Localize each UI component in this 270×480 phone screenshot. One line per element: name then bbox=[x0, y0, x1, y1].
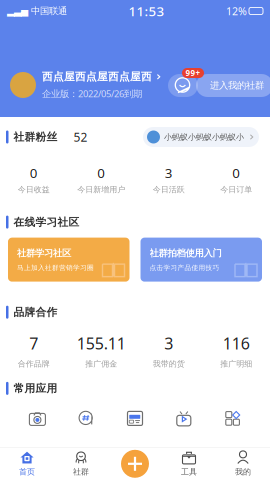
staticText: 今日活跃 bbox=[153, 185, 185, 194]
button[interactable]: 西点屋西点屋西点屋西 bbox=[0, 70, 162, 100]
staticText: 社群学习社区 bbox=[17, 247, 71, 259]
button[interactable]: 消息 bbox=[168, 74, 198, 97]
button[interactable]: 进入我的社群 bbox=[196, 74, 270, 97]
staticText: 3 bbox=[165, 164, 173, 182]
staticText: 116 bbox=[223, 333, 250, 354]
button[interactable]: 社群 bbox=[54, 451, 108, 477]
button[interactable]: 文章 bbox=[111, 411, 159, 426]
staticText: 今日新增用户 bbox=[77, 185, 125, 194]
staticText: 社群粉丝 bbox=[13, 130, 57, 143]
staticText: 我带的货 bbox=[153, 359, 185, 369]
staticText: 99+ bbox=[185, 68, 200, 78]
staticText: 马上加入社群营销学习圈 bbox=[17, 264, 94, 272]
staticText: 西点屋西点屋西点屋西 bbox=[42, 70, 152, 83]
staticText: 推广佣金 bbox=[85, 359, 117, 369]
button[interactable]: 我的 bbox=[216, 451, 270, 477]
button[interactable]: 拍照 bbox=[13, 411, 62, 426]
staticText: 155.11 bbox=[77, 333, 126, 354]
staticText: 点击学习产品使用技巧 bbox=[149, 264, 219, 272]
staticText: ▂▃▅ 中国联通 bbox=[7, 5, 67, 17]
staticText: 52 bbox=[73, 129, 87, 145]
button[interactable]: 新建 bbox=[108, 450, 162, 478]
staticText: 0 bbox=[30, 164, 38, 182]
button[interactable]: 小蚂蚁小蚂蚁小蚂蚁小 bbox=[143, 127, 259, 147]
staticText: 12% bbox=[226, 4, 247, 18]
staticText: 社群 bbox=[73, 467, 89, 477]
staticText: 工具 bbox=[181, 467, 197, 477]
button[interactable]: 社群拍档使用入门 bbox=[140, 238, 262, 282]
staticText: 推广明细 bbox=[220, 359, 252, 369]
staticText: 在线学习社区 bbox=[13, 215, 79, 229]
staticText: 品牌合作 bbox=[13, 306, 57, 319]
button[interactable]: 首页 bbox=[0, 451, 54, 477]
button[interactable]: 更多 bbox=[208, 411, 257, 426]
button[interactable]: 视频 bbox=[159, 411, 208, 426]
staticText: 企业版：2022/05/26到期 bbox=[42, 87, 142, 100]
staticText: 7 bbox=[29, 333, 38, 354]
staticText: 今日订单 bbox=[220, 185, 252, 194]
staticText: 小蚂蚁小蚂蚁小蚂蚁小 bbox=[164, 132, 244, 142]
staticText: 0 bbox=[232, 164, 240, 182]
staticText: 合作品牌 bbox=[18, 359, 50, 369]
staticText: 社群拍档使用入门 bbox=[149, 247, 221, 259]
staticText: 我的 bbox=[235, 467, 251, 477]
staticText: 今日收益 bbox=[18, 185, 50, 194]
staticText: 进入我的社群 bbox=[210, 80, 264, 91]
staticText: 0 bbox=[97, 164, 105, 182]
button[interactable]: 社群学习社区 bbox=[8, 238, 129, 282]
button[interactable]: 工具 bbox=[162, 451, 216, 477]
staticText: 3 bbox=[164, 333, 173, 354]
staticText: 11:53 bbox=[128, 2, 164, 20]
staticText: 常用应用 bbox=[13, 382, 57, 395]
staticText: 首页 bbox=[19, 467, 35, 477]
button[interactable]: 话题 bbox=[62, 411, 111, 426]
